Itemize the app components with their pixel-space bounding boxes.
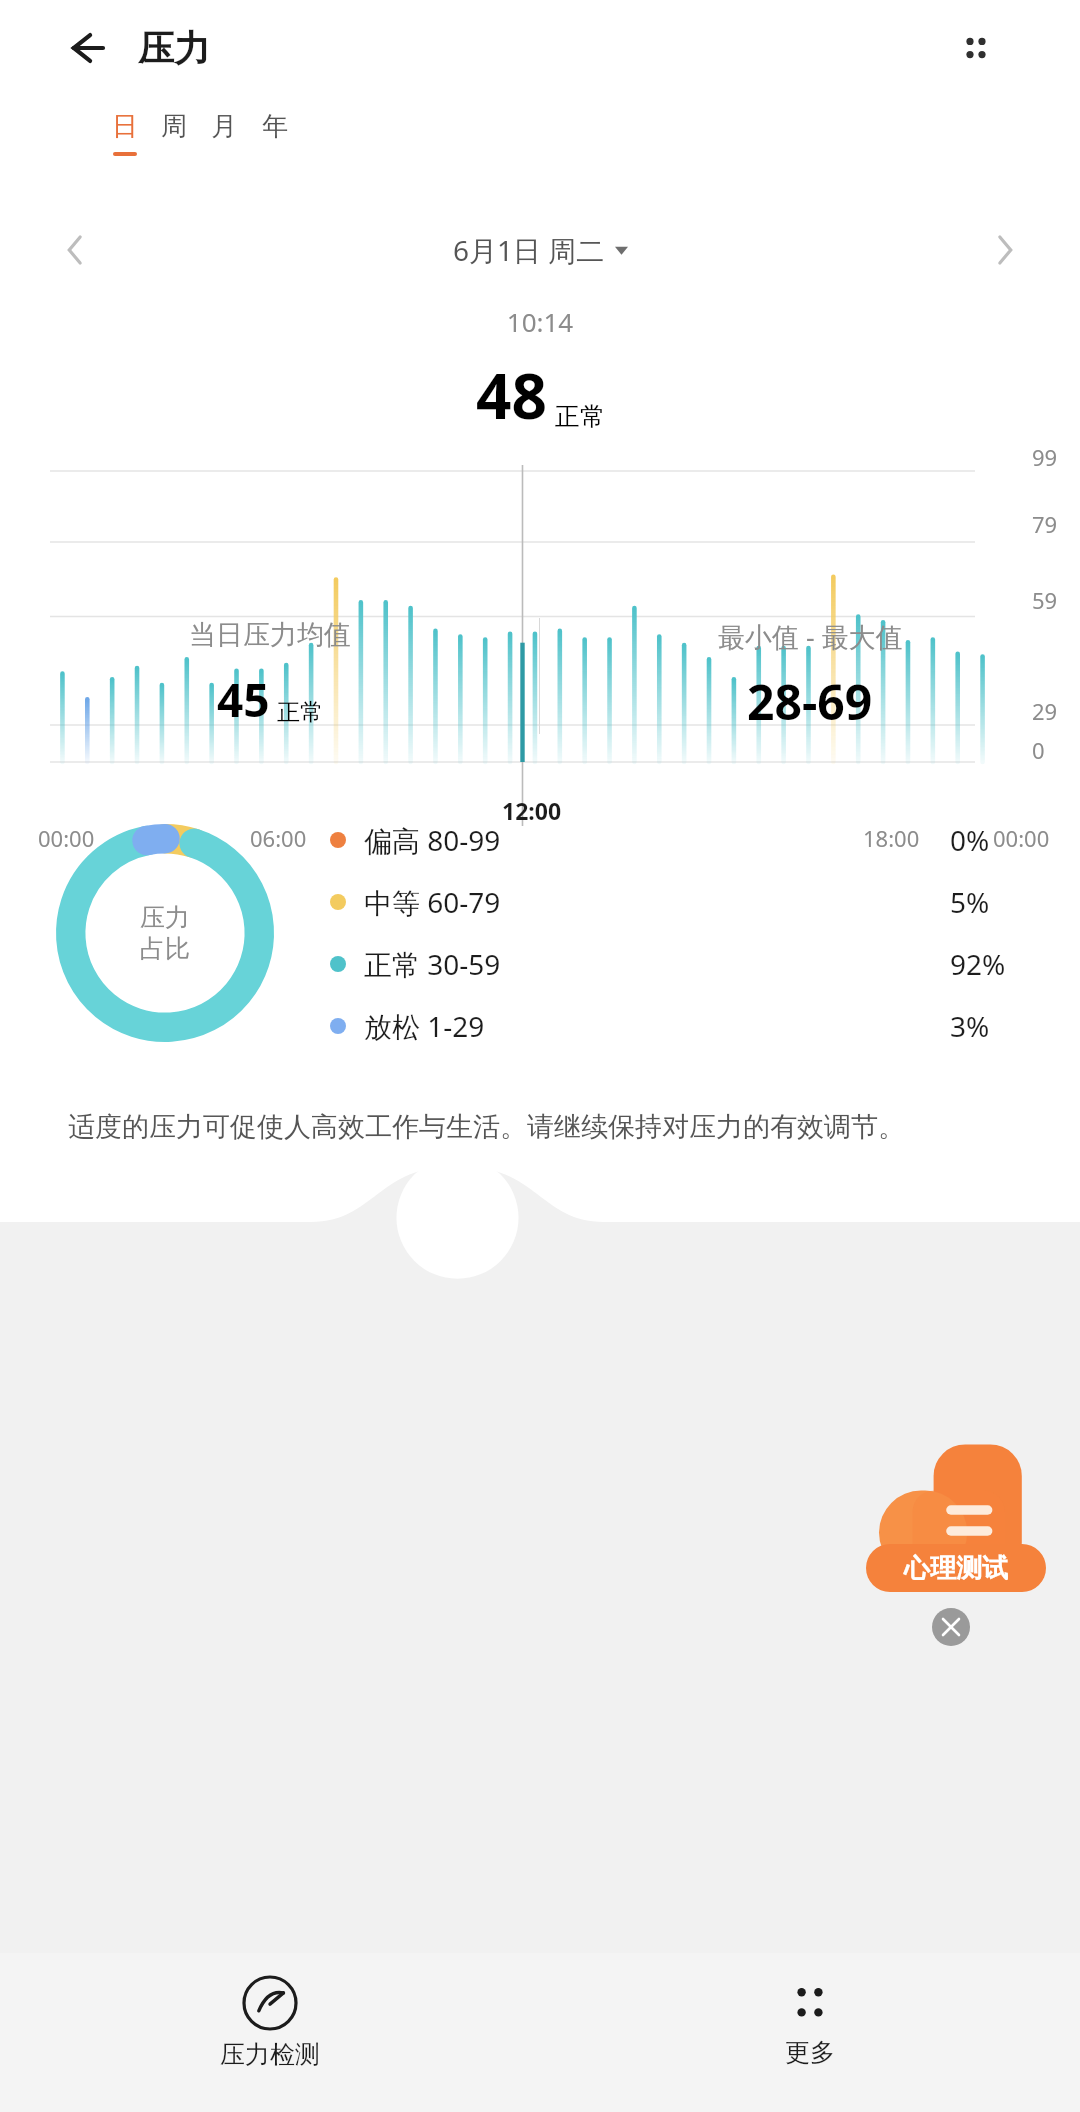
staticText: 心理测试 <box>904 1552 1008 1585</box>
button[interactable]: Back <box>54 16 118 80</box>
staticText: 6月1日 周二 <box>453 231 605 269</box>
button[interactable]: 年 <box>245 110 305 152</box>
button[interactable]: 6月1日 周二 <box>443 225 638 275</box>
staticText: 79 <box>1032 509 1058 539</box>
button[interactable]: 更多 <box>540 1953 1080 2112</box>
button[interactable]: 月 <box>194 110 254 152</box>
staticText: 48 <box>476 353 547 437</box>
staticText: 0% <box>950 821 1080 859</box>
button[interactable]: 正常 30-59 <box>330 933 1080 995</box>
staticText: 59 <box>1032 585 1058 615</box>
staticText: 00:00 <box>993 823 1050 853</box>
button[interactable]: 心理测试 <box>866 1544 1046 1592</box>
button[interactable]: More options <box>944 16 1008 80</box>
staticText: 正常 <box>277 698 323 727</box>
staticText: 12:00 <box>502 795 562 826</box>
staticText: 中等 60-79 <box>364 883 501 921</box>
staticText: 放松 1-29 <box>364 1007 485 1045</box>
staticText: 最小值 - 最大值 <box>718 618 903 655</box>
staticText: 0 <box>1032 735 1045 765</box>
staticText: 压力检测 <box>220 2039 320 2070</box>
staticText: 3% <box>950 1007 1080 1045</box>
staticText: 偏高 80-99 <box>364 821 501 859</box>
button[interactable]: 日 <box>95 110 155 156</box>
button[interactable]: 中等 60-79 <box>330 871 1080 933</box>
staticText: 28-69 <box>747 669 873 734</box>
staticText: 00:00 <box>38 823 95 853</box>
staticText: 占比 <box>140 933 190 964</box>
staticText: 当日压力均值 <box>189 618 351 652</box>
button[interactable]: Close <box>932 1608 970 1646</box>
button[interactable]: 周 <box>144 110 204 152</box>
staticText: 06:00 <box>250 823 307 853</box>
button[interactable]: Previous day <box>48 222 104 278</box>
staticText: 92% <box>950 945 1080 983</box>
staticText: 18:00 <box>863 823 920 853</box>
staticText: 月 <box>211 110 237 143</box>
staticText: 10:14 <box>0 304 1080 339</box>
staticText: 适度的压力可促使人高效工作与生活。请继续保持对压力的有效调节。 <box>68 1110 1012 1144</box>
button[interactable]: 压力检测 <box>0 1953 540 2112</box>
staticText: 正常 <box>555 401 605 432</box>
button[interactable]: 偏高 80-99 <box>330 809 1080 871</box>
button[interactable]: Next day <box>976 222 1032 278</box>
staticText: 周 <box>161 110 187 143</box>
staticText: 99 <box>1032 442 1058 472</box>
staticText: 压力 <box>138 26 210 71</box>
staticText: 压力 <box>140 902 190 933</box>
staticText: 29 <box>1032 696 1058 726</box>
button[interactable]: 放松 1-29 <box>330 995 1080 1057</box>
staticText: 45 <box>217 668 270 731</box>
staticText: 正常 30-59 <box>364 945 501 983</box>
staticText: 更多 <box>785 2037 835 2068</box>
staticText: 年 <box>262 110 288 143</box>
staticText: 5% <box>950 883 1080 921</box>
staticText: 日 <box>112 110 138 143</box>
